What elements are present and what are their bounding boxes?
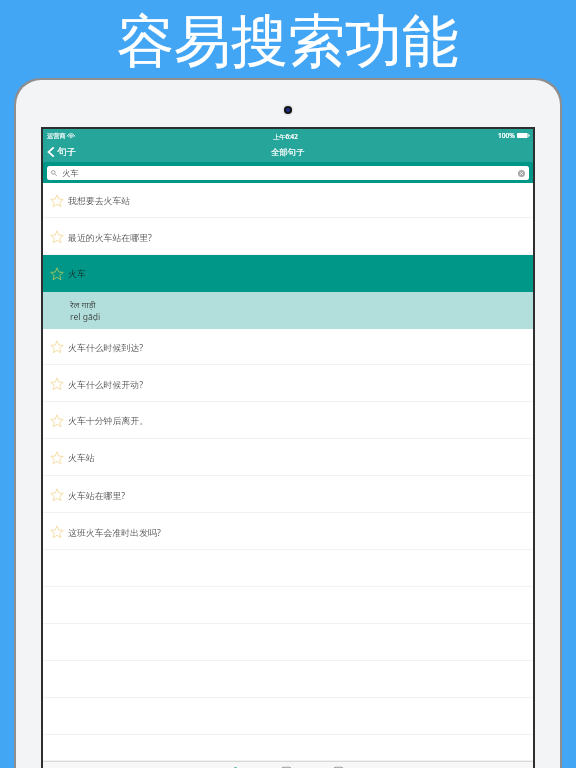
staticText: रेल गाड़ी (70, 299, 96, 311)
button[interactable]: Phrasebook tab (281, 764, 292, 768)
staticText: 100% (498, 131, 515, 140)
button[interactable]: Back (48, 142, 76, 162)
staticText: 上午6:42 (273, 132, 298, 140)
other: Clear (518, 170, 525, 177)
staticText: 运营商 (47, 132, 66, 140)
staticText: 我想要去火车站 (68, 195, 131, 206)
button[interactable]: 火车 (43, 255, 533, 292)
staticText: 最近的火车站在哪里? (68, 231, 152, 243)
staticText: rel gāḍi (70, 311, 101, 323)
button[interactable]: 火车什么时候开动? (43, 365, 533, 402)
button[interactable]: 火车站在哪里? (43, 476, 533, 513)
staticText: 容易搜索功能 (117, 6, 459, 78)
staticText: 火车 (68, 268, 86, 279)
other: Back (48, 147, 54, 157)
staticText: 火车站在哪里? (68, 489, 126, 501)
staticText: 这班火车会准时出发吗? (68, 526, 161, 538)
staticText: 句子 (57, 146, 76, 158)
button[interactable]: 火车站 (43, 439, 533, 476)
button[interactable]: 火车什么时候到达? (43, 329, 533, 365)
button[interactable]: 火车十分钟后离开。 (43, 402, 533, 439)
button[interactable]: Settings tab (333, 764, 344, 768)
staticText: 火车 (62, 168, 79, 178)
staticText: 火车十分钟后离开。 (68, 415, 149, 426)
staticText: 火车什么时候到达? (68, 341, 143, 353)
staticText: 火车什么时候开动? (68, 378, 143, 390)
button[interactable]: 火车 (51, 166, 525, 180)
button[interactable]: 最近的火车站在哪里? (43, 218, 533, 255)
staticText: 火车站 (68, 452, 95, 463)
button[interactable]: 我想要去火车站 (43, 183, 533, 218)
staticText: 全部句子 (271, 147, 305, 157)
button[interactable]: 这班火车会准时出发吗? (43, 513, 533, 550)
button[interactable]: Sentences tab (230, 764, 241, 768)
